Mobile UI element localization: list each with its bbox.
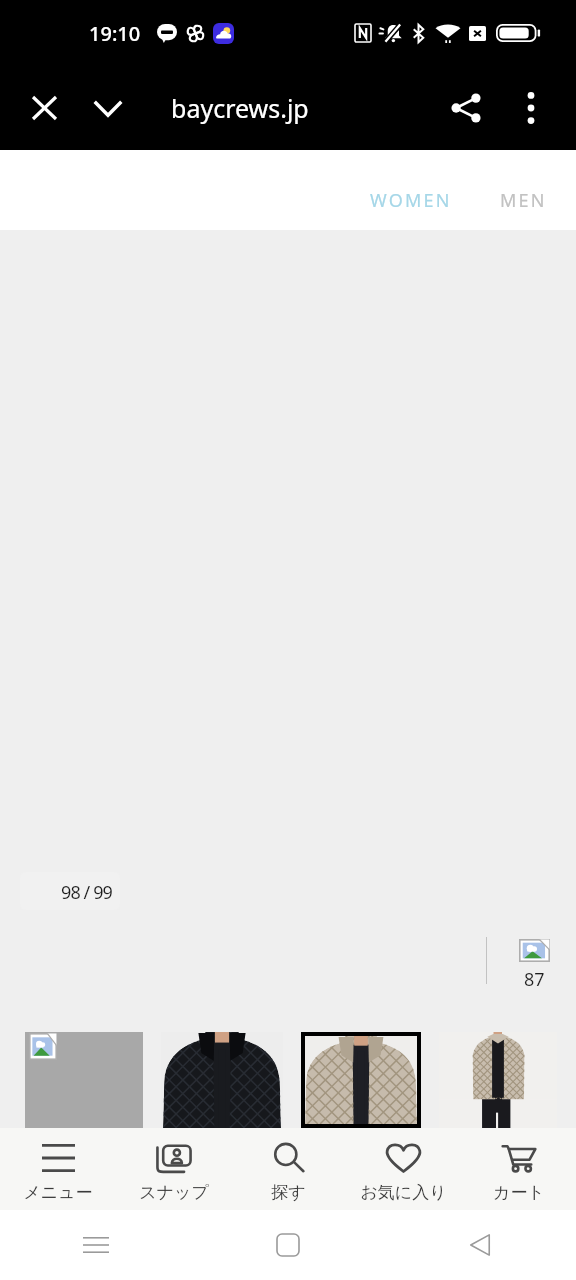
button[interactable]: Home: [192, 1210, 384, 1280]
button[interactable]: スナップ: [116, 1128, 231, 1210]
button[interactable]: Recent apps: [0, 1210, 192, 1280]
staticText: WOMEN: [370, 188, 452, 213]
button[interactable]: 探す: [231, 1128, 346, 1210]
staticText: カート: [493, 1182, 545, 1203]
staticText: MEN: [500, 188, 547, 213]
button[interactable]: More options: [501, 78, 561, 138]
staticText: スナップ: [139, 1182, 209, 1203]
staticText: お気に入り: [360, 1182, 447, 1203]
staticText: baycrews.jp: [171, 91, 309, 125]
button[interactable]: Back: [384, 1210, 576, 1280]
button[interactable]: [301, 1032, 421, 1128]
staticText: 探す: [271, 1182, 306, 1203]
button[interactable]: WOMEN: [358, 176, 464, 225]
button[interactable]: メニュー: [0, 1128, 116, 1210]
button[interactable]: Close: [14, 78, 74, 138]
button[interactable]: 87: [504, 939, 564, 992]
staticText: 98 / 99: [61, 880, 112, 905]
staticText: 87: [524, 967, 545, 992]
button[interactable]: [25, 1032, 143, 1128]
button[interactable]: お気に入り: [346, 1128, 461, 1210]
button[interactable]: Share: [436, 78, 496, 138]
button[interactable]: [163, 1032, 281, 1128]
staticText: 19:10: [89, 20, 141, 47]
button[interactable]: MEN: [488, 176, 559, 225]
button[interactable]: カート: [461, 1128, 576, 1210]
button[interactable]: [439, 1032, 557, 1128]
button[interactable]: Collapse: [78, 78, 138, 138]
staticText: メニュー: [23, 1182, 93, 1203]
